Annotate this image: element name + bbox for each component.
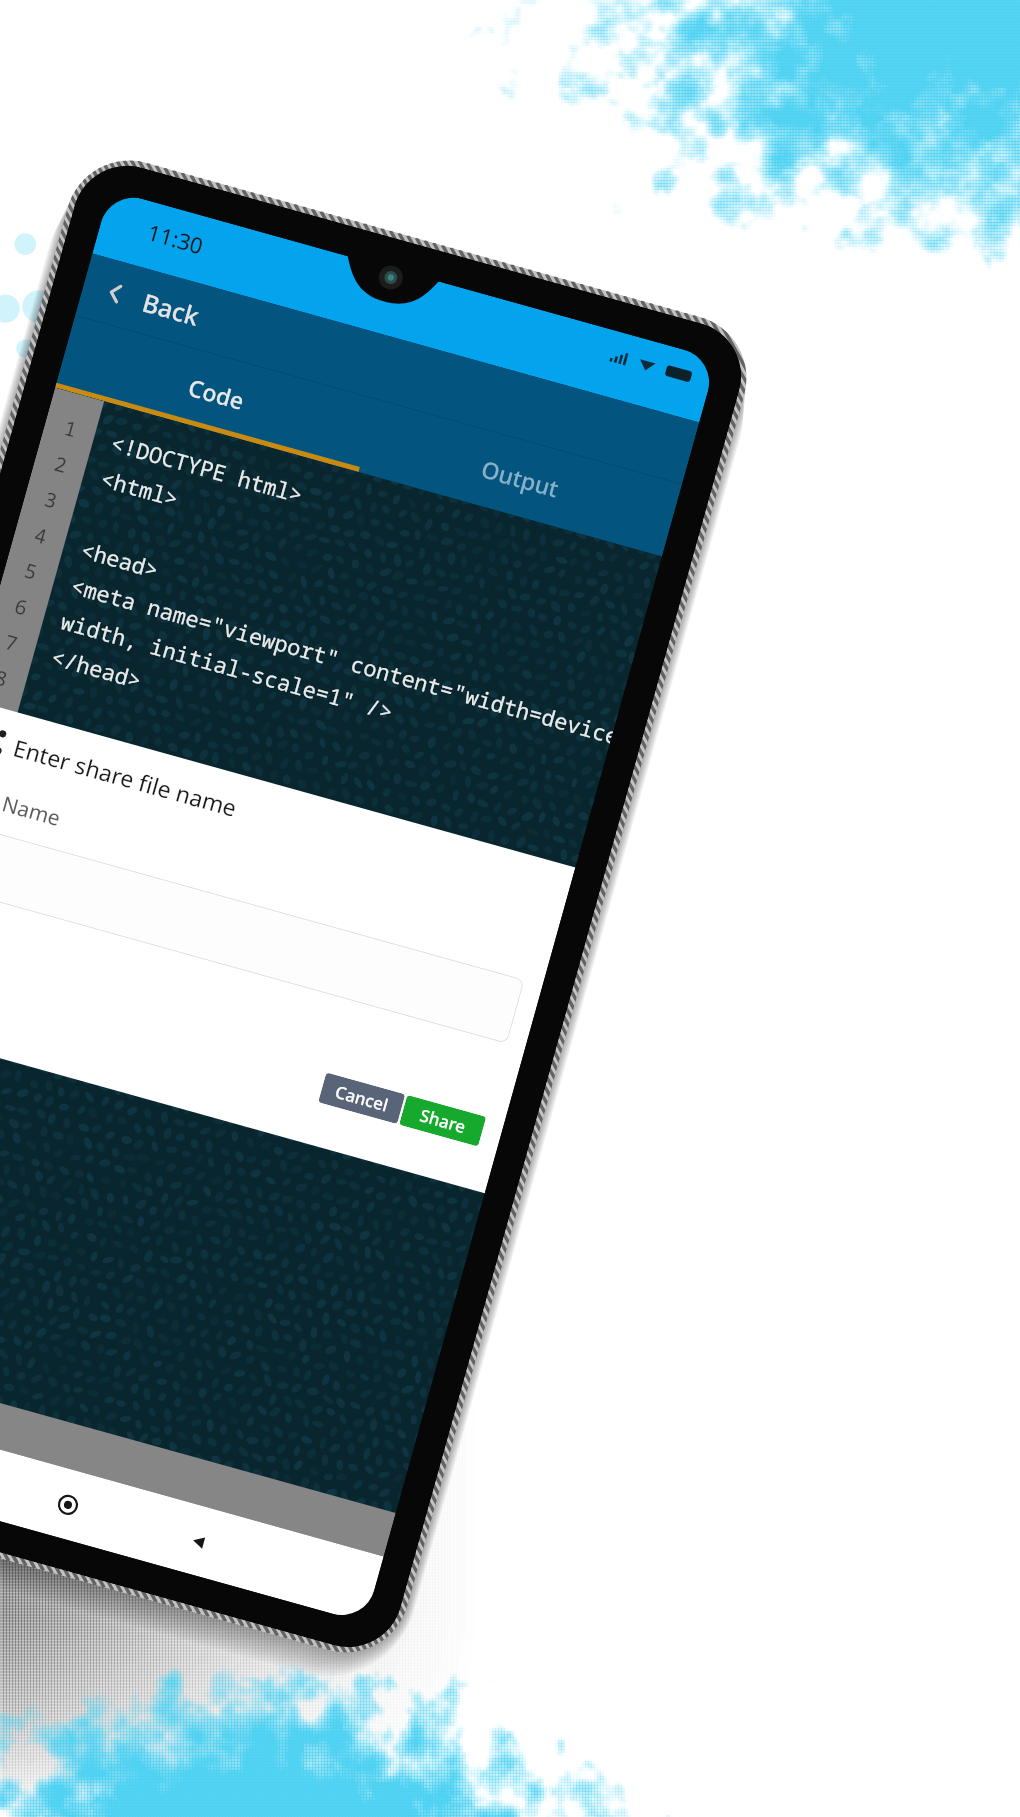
staticText: Enter share file name [10, 731, 241, 823]
staticText: <!DOCTYPE html> [108, 427, 307, 509]
staticText: Back [139, 285, 203, 333]
staticText: width, initial-scale=1" /> [58, 605, 397, 726]
staticText: 8 [0, 664, 10, 693]
staticText: </body> [8, 784, 106, 837]
staticText: 7 [2, 628, 20, 657]
staticText: 5 [21, 557, 40, 586]
staticText: 6 [12, 592, 30, 621]
staticText: 4 [31, 521, 50, 550]
staticText: 9 [0, 699, 1, 728]
staticText: Cancel [333, 1080, 391, 1116]
staticText: 11:30 [144, 216, 207, 261]
staticText: <head> [78, 534, 163, 584]
button[interactable]: Recents [161, 1504, 235, 1578]
staticText: 2 [51, 450, 70, 479]
button[interactable]: Output [358, 400, 682, 556]
staticText: 1 [61, 414, 80, 443]
button[interactable]: Home [31, 1468, 105, 1542]
button[interactable] [0, 822, 524, 1044]
button[interactable]: Cancel [318, 1072, 405, 1124]
staticText: 3 [41, 485, 60, 514]
staticText: Code [185, 371, 248, 416]
button[interactable]: Back [87, 265, 144, 321]
staticText: Output [478, 452, 562, 503]
staticText: Share [417, 1103, 469, 1138]
button[interactable]: Code [55, 315, 379, 472]
staticText: <html> [98, 463, 183, 513]
staticText: <meta name="viewport" content="width=dev… [68, 570, 616, 749]
staticText: </head> [48, 641, 146, 695]
staticText: File Name [0, 779, 64, 833]
button[interactable]: Share [399, 1095, 486, 1147]
staticText: <body> [28, 712, 113, 763]
